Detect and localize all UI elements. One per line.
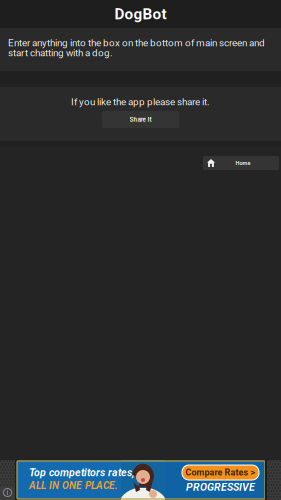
staticText: start chatting with a dog. xyxy=(8,47,113,59)
staticText: ALL IN ONE PLACE. xyxy=(29,479,118,491)
staticText: Home xyxy=(235,160,250,166)
staticText: Share It xyxy=(129,116,151,123)
staticText: PROGRESSIVE xyxy=(186,481,255,493)
staticText: Top competitors rates, xyxy=(29,466,135,479)
staticText: Compare Rates > xyxy=(185,467,255,478)
button[interactable]: Top competitors rates, xyxy=(17,461,265,499)
staticText: If you like the app please share it. xyxy=(71,96,210,108)
staticText: i xyxy=(6,488,8,497)
staticText: DogBot xyxy=(114,5,166,23)
button[interactable]: Share It xyxy=(102,111,179,128)
button[interactable]: Home xyxy=(203,156,279,170)
staticText: Enter anything into the box on the botto… xyxy=(8,37,265,49)
